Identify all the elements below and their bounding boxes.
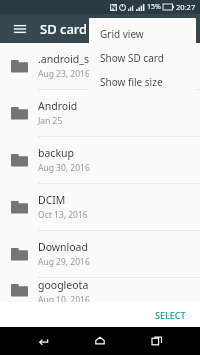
button[interactable]: backup	[0, 137, 200, 183]
button[interactable]: Download	[0, 231, 200, 277]
staticText: 20:27	[176, 2, 196, 12]
button[interactable]: Recent apps	[143, 327, 171, 355]
staticText: Show SD card	[100, 51, 164, 65]
staticText: Grid view	[100, 27, 144, 41]
staticText: Aug 10, 2016	[38, 294, 90, 302]
staticText: googleota	[38, 278, 89, 292]
button[interactable]: Grid view	[89, 22, 196, 46]
staticText: DCIM	[38, 193, 66, 207]
button[interactable]: Back	[29, 327, 57, 355]
button[interactable]: Show SD card	[89, 46, 196, 70]
button[interactable]: SELECT	[149, 305, 192, 325]
staticText: Jan 25	[38, 115, 63, 127]
button[interactable]: DCIM	[0, 184, 200, 230]
staticText: Show file size	[100, 75, 163, 89]
staticText: Aug 23, 2016	[38, 68, 90, 80]
staticText: Oct 13, 2016	[38, 209, 88, 221]
staticText: SD card	[40, 20, 88, 38]
button[interactable]: .android_secure	[0, 43, 200, 89]
button[interactable]: googleota	[0, 278, 200, 302]
staticText: Aug 29, 2016	[38, 256, 90, 268]
staticText: Download	[38, 240, 88, 254]
button[interactable]: Open navigation drawer	[6, 15, 34, 43]
button[interactable]: Android	[0, 90, 200, 136]
staticText: .android_secure	[38, 52, 117, 66]
staticText: Android	[38, 99, 78, 113]
button[interactable]: Home	[86, 327, 114, 355]
staticText: SELECT	[155, 309, 186, 321]
staticText: Aug 30, 2016	[38, 162, 90, 174]
staticText: backup	[38, 146, 74, 160]
button[interactable]: Show file size	[89, 70, 196, 94]
staticText: 15%	[147, 2, 161, 12]
